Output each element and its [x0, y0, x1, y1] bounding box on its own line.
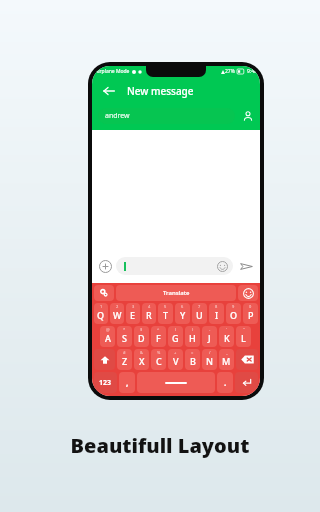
staticText: H	[189, 332, 196, 344]
button[interactable]: 6	[175, 303, 190, 324]
staticText: %	[157, 350, 161, 355]
staticText: Beautifull Layout	[0, 432, 320, 459]
staticText: *	[123, 327, 126, 332]
staticText: I	[215, 309, 219, 321]
staticText: N	[206, 355, 213, 367]
staticText: R	[146, 309, 152, 321]
button[interactable]: Add attachment	[96, 257, 114, 275]
staticText: /	[209, 350, 211, 355]
staticText: 5	[164, 304, 167, 309]
staticText: 3	[132, 304, 135, 309]
staticText: U	[196, 309, 203, 321]
button[interactable]: @	[100, 326, 115, 347]
button[interactable]: ^	[151, 326, 166, 347]
button[interactable]: Shift	[94, 349, 115, 370]
button[interactable]: 3	[126, 303, 140, 324]
staticText: $	[140, 327, 143, 332]
button[interactable]: 1	[94, 303, 108, 324]
button[interactable]: Translate	[116, 285, 236, 301]
button[interactable]: )	[185, 326, 200, 347]
staticText: V	[173, 355, 179, 367]
staticText: andrew	[105, 111, 130, 121]
staticText: A	[105, 332, 111, 344]
staticText: G	[172, 332, 179, 344]
staticText: @	[106, 327, 110, 332]
button[interactable]: 0	[243, 303, 258, 324]
staticText: Translate	[163, 289, 190, 297]
button[interactable]: Back	[100, 82, 118, 100]
staticText: P	[248, 309, 254, 321]
staticText: Y	[180, 309, 186, 321]
staticText: T	[163, 309, 169, 321]
button[interactable]: _	[219, 349, 234, 370]
button[interactable]: 4	[142, 303, 156, 324]
button[interactable]: 7	[192, 303, 207, 324]
button[interactable]: &	[134, 349, 149, 370]
staticText: &	[140, 350, 143, 355]
staticText: 1	[100, 304, 103, 309]
staticText: C	[156, 355, 162, 367]
button[interactable]: Send	[236, 256, 256, 276]
button[interactable]: 9	[226, 303, 241, 324]
staticText: F	[156, 332, 161, 344]
staticText: D	[138, 332, 145, 344]
staticText: =	[191, 350, 194, 355]
staticText: ,	[126, 377, 129, 388]
button[interactable]: #	[117, 349, 132, 370]
staticText: M	[222, 355, 231, 367]
button[interactable]: *	[117, 326, 132, 347]
staticText: 8	[215, 304, 218, 309]
button[interactable]: 5	[158, 303, 173, 324]
staticText: S	[122, 332, 127, 344]
button[interactable]: Add contact	[241, 109, 255, 123]
button[interactable]: -	[202, 326, 217, 347]
staticText: (	[175, 327, 177, 332]
staticText: .	[224, 377, 227, 388]
staticText: New message	[127, 84, 194, 98]
staticText: 123	[99, 378, 112, 388]
staticText: W	[113, 309, 122, 321]
button[interactable]: 2	[110, 303, 124, 324]
button[interactable]: /	[202, 349, 217, 370]
staticText: #	[123, 350, 126, 355]
staticText: 7	[198, 304, 201, 309]
staticText: E	[130, 309, 136, 321]
button[interactable]: (	[168, 326, 183, 347]
button[interactable]: 8	[209, 303, 224, 324]
staticText: 6	[181, 304, 184, 309]
staticText: Airplane Mode	[95, 68, 130, 75]
staticText: '	[226, 327, 227, 332]
staticText: ^	[157, 327, 160, 332]
button[interactable]: Space	[137, 372, 215, 393]
staticText: J	[208, 332, 211, 344]
staticText: O	[230, 309, 238, 321]
button[interactable]: "	[236, 326, 251, 347]
button[interactable]: +	[168, 349, 183, 370]
staticText: Q	[97, 309, 105, 321]
button[interactable]: ,	[119, 372, 135, 393]
staticText: X	[139, 355, 145, 367]
button[interactable]: .	[217, 372, 233, 393]
staticText: -	[209, 327, 211, 332]
staticText: +	[174, 350, 177, 355]
button[interactable]: Delete	[236, 349, 258, 370]
staticText: "	[243, 327, 245, 332]
button[interactable]: $	[134, 326, 149, 347]
button[interactable]: '	[219, 326, 234, 347]
staticText: 9:48	[247, 68, 257, 75]
button[interactable]	[116, 257, 233, 275]
staticText: L	[241, 332, 246, 344]
staticText: 9	[232, 304, 235, 309]
button[interactable]: Numbers and symbols	[94, 372, 117, 393]
button[interactable]: Enter	[235, 372, 258, 393]
staticText: 4	[148, 304, 151, 309]
button[interactable]: Emoji	[238, 285, 258, 301]
staticText: Z	[122, 355, 128, 367]
staticText: B	[190, 355, 196, 367]
button[interactable]: =	[185, 349, 200, 370]
button[interactable]: andrew	[98, 108, 235, 124]
button[interactable]: Keyboard settings	[94, 285, 114, 301]
staticText: K	[224, 332, 230, 344]
staticText: _	[226, 350, 228, 355]
button[interactable]: %	[151, 349, 166, 370]
